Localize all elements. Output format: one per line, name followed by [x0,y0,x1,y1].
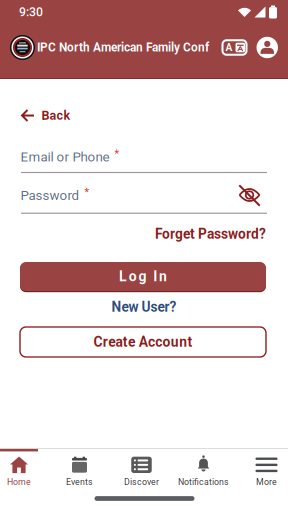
staticText: Discover [124,477,159,487]
staticText: Notifications [178,477,229,487]
staticText: * [115,147,120,160]
staticText: A [225,42,232,53]
button[interactable]: Home [0,455,48,488]
button[interactable]: Create Account [20,327,266,357]
button[interactable]: Discover [112,455,170,488]
button[interactable]: Log In [20,262,266,291]
button[interactable]: Translate [221,38,247,56]
staticText: Log In [119,268,167,285]
button[interactable]: Email or Phone [20,145,268,174]
staticText: Events [66,477,93,487]
button[interactable]: Password [20,183,268,213]
button[interactable]: Events [50,455,108,488]
staticText: Create Account [94,334,192,350]
button[interactable]: Account [247,37,278,58]
button[interactable]: Forget Password? [155,226,266,242]
staticText: Password [21,188,83,203]
staticText: New User? [111,299,176,315]
staticText: Email or Phone [21,149,113,165]
button[interactable]: Show password [238,184,260,206]
button[interactable]: Notifications [174,455,232,488]
staticText: Forget Password? [155,226,266,242]
button[interactable]: More [237,455,288,488]
staticText: More [256,477,277,487]
staticText: * [85,186,90,198]
button[interactable]: New User? [111,299,176,315]
staticText: Back [41,108,70,123]
staticText: IPC North American Family Conf [37,40,209,54]
button[interactable]: Back [21,108,70,123]
staticText: 9:30 [19,5,43,19]
staticText: Home [7,477,31,487]
